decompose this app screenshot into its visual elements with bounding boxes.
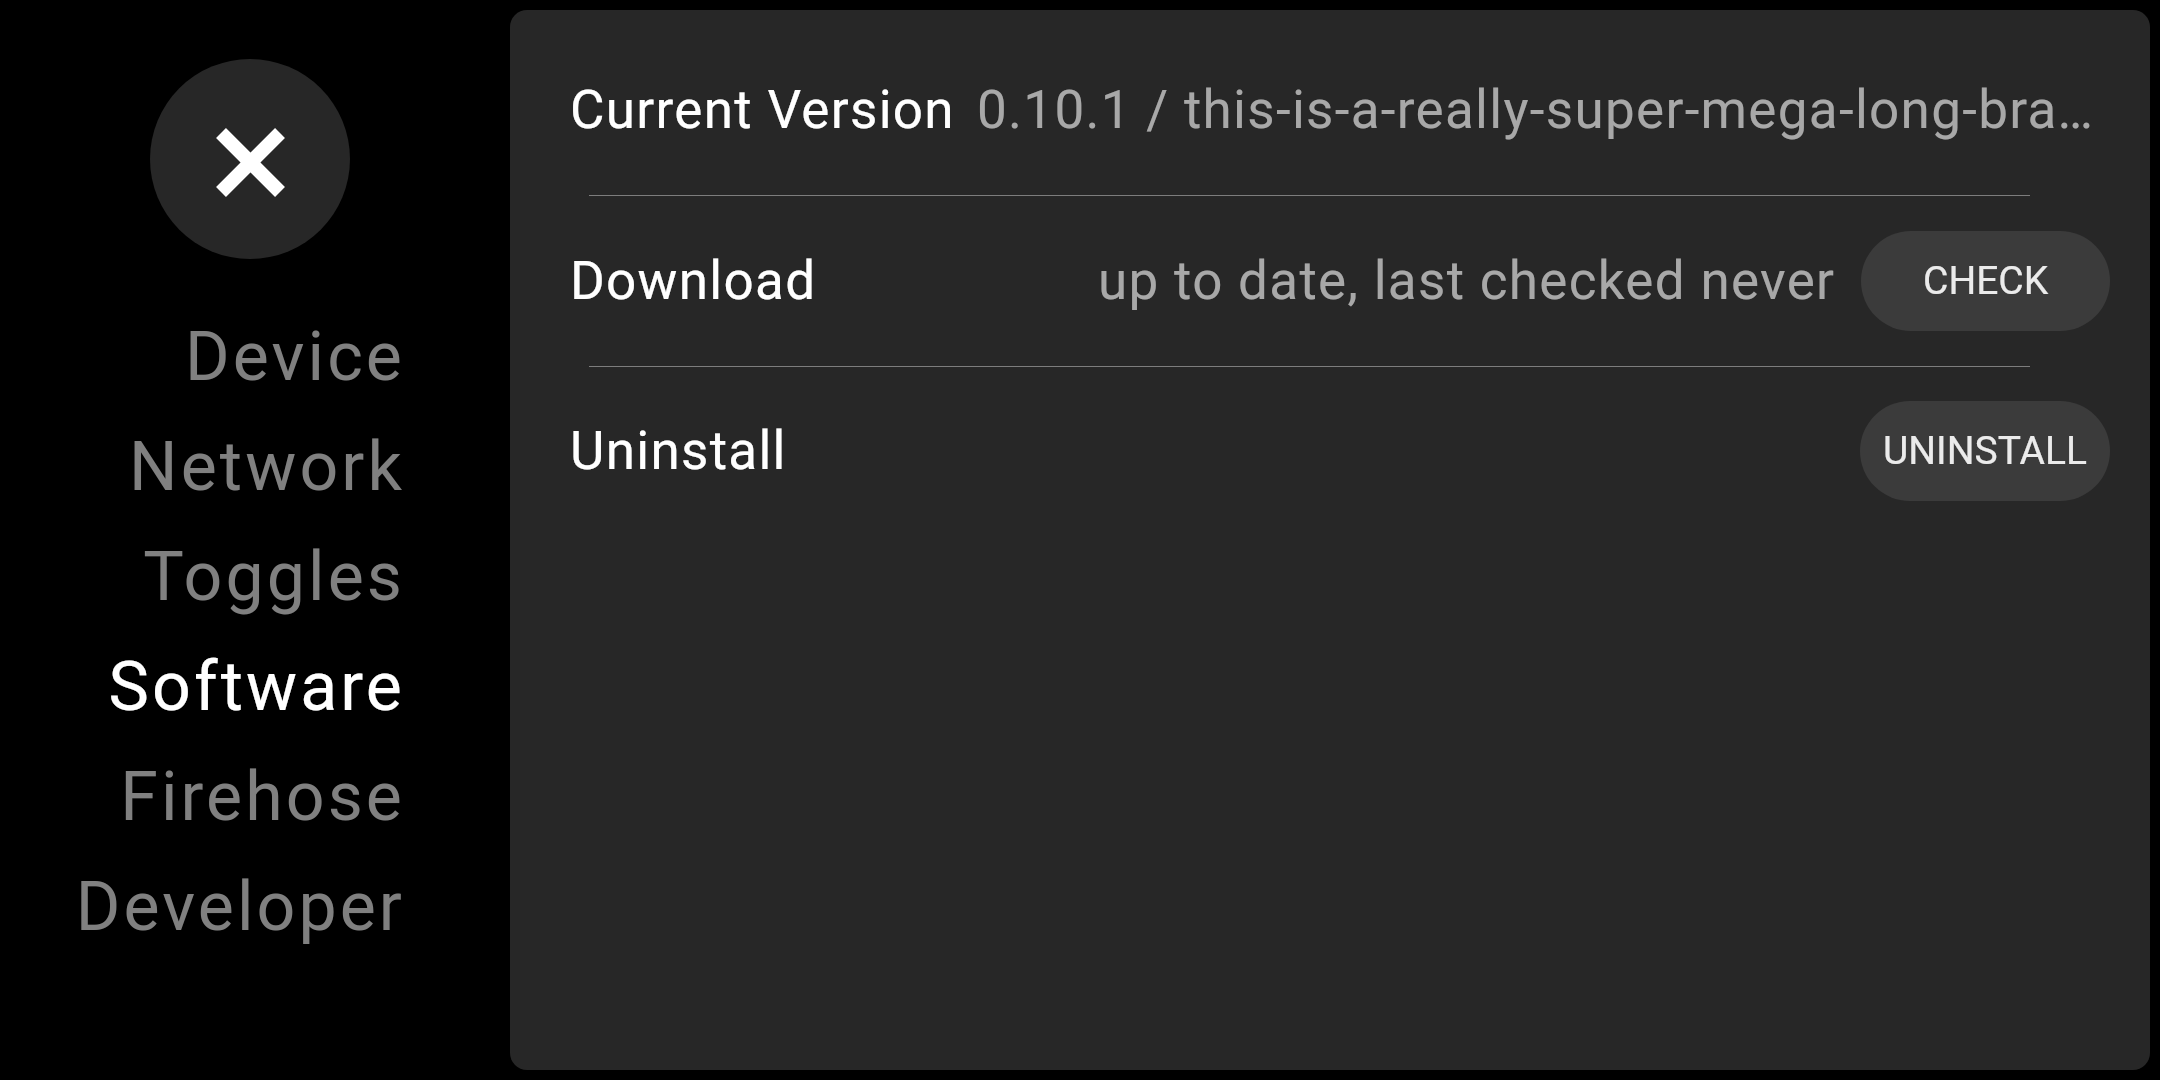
button[interactable]: Current Version	[510, 24, 2150, 195]
button[interactable]: Device	[0, 302, 510, 412]
button[interactable]: CHECK	[1861, 231, 2110, 331]
button[interactable]: Software	[0, 632, 510, 742]
button[interactable]: Network	[0, 412, 510, 522]
button[interactable]: Firehose	[0, 742, 510, 852]
staticText: CHECK	[1923, 258, 2049, 304]
staticText: Developer	[75, 867, 405, 947]
staticText: Device	[185, 317, 405, 397]
staticText: 0.10.1 / this-is-a-really-super-mega-lon…	[977, 79, 2110, 141]
staticText: Software	[108, 647, 405, 727]
staticText: Firehose	[120, 757, 405, 837]
button[interactable]: UNINSTALL	[1860, 401, 2110, 501]
button[interactable]: Close	[150, 59, 350, 259]
staticText: Network	[129, 427, 405, 507]
staticText: Current Version	[570, 79, 955, 141]
button[interactable]: Download	[510, 196, 2150, 366]
staticText: Download	[570, 250, 817, 312]
button[interactable]: Developer	[0, 852, 510, 962]
staticText: up to date, last checked never	[1098, 250, 1836, 312]
staticText: Toggles	[143, 537, 405, 617]
staticText: UNINSTALL	[1883, 428, 2087, 474]
staticText: Uninstall	[570, 420, 787, 482]
button[interactable]: Uninstall	[510, 367, 2150, 535]
button[interactable]: Toggles	[0, 522, 510, 632]
